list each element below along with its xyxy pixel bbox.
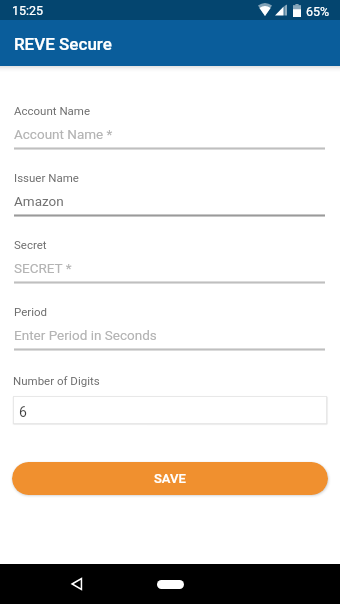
- button[interactable]: Secret: [0, 228, 340, 288]
- staticText: Number of Digits: [13, 374, 100, 387]
- staticText: Amazon: [14, 193, 64, 209]
- button[interactable]: Account Name: [0, 94, 340, 154]
- button[interactable]: Period: [0, 295, 340, 355]
- button[interactable]: Home: [157, 580, 184, 589]
- button[interactable]: Back: [64, 572, 88, 596]
- staticText: Enter Period in Seconds: [14, 327, 157, 343]
- staticText: 6: [19, 404, 27, 420]
- staticText: 65%: [306, 4, 330, 19]
- staticText: SAVE: [154, 471, 186, 486]
- staticText: REVE Secure: [14, 34, 112, 54]
- button[interactable]: SAVE: [12, 462, 328, 495]
- button[interactable]: Issuer Name: [0, 161, 340, 221]
- staticText: SECRET *: [14, 260, 72, 276]
- staticText: Period: [14, 305, 48, 318]
- staticText: 15:25: [12, 3, 44, 18]
- staticText: Issuer Name: [14, 171, 79, 184]
- staticText: Account Name: [14, 104, 91, 117]
- staticText: Secret: [14, 238, 47, 251]
- button[interactable]: Number of Digits: [0, 362, 340, 424]
- staticText: Account Name *: [14, 126, 113, 142]
